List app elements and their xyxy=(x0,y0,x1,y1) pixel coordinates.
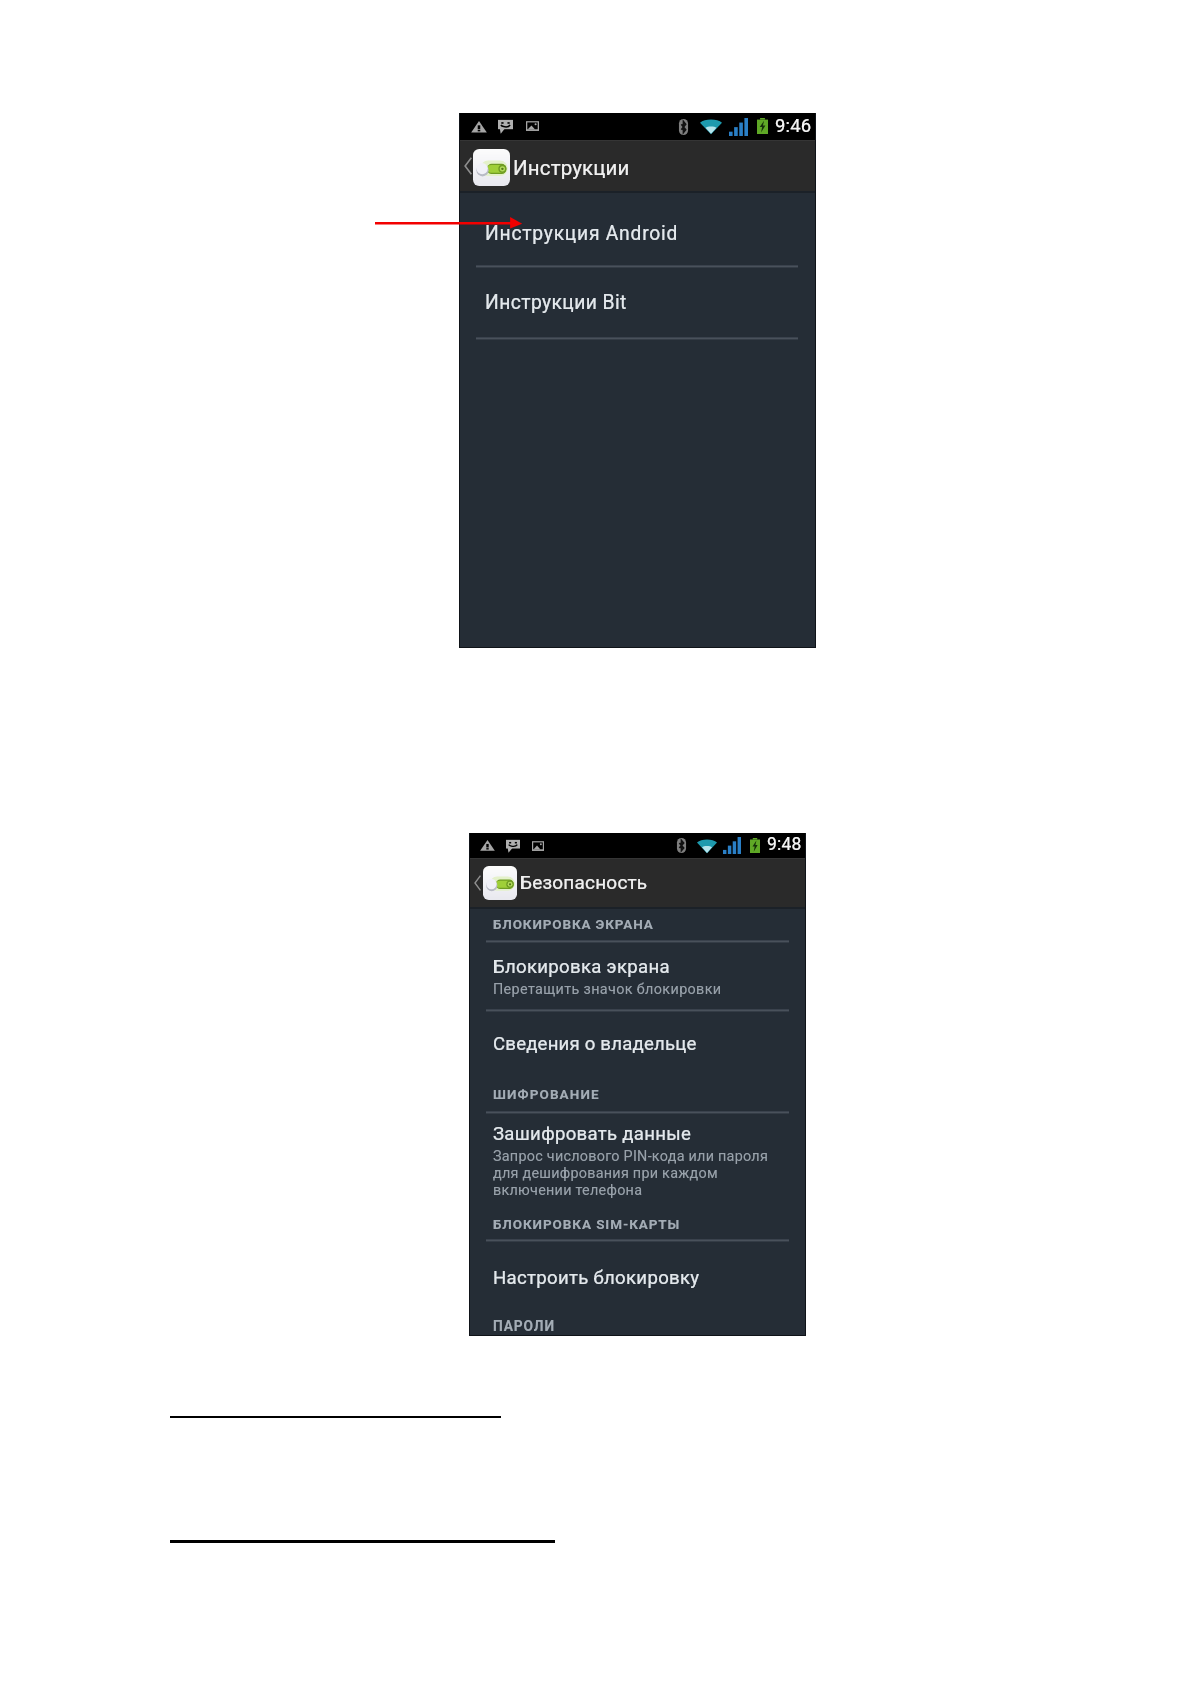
staticText: 9:46 xyxy=(775,115,812,137)
staticText: Блокировка экрана xyxy=(493,956,670,978)
staticText: Безопасность xyxy=(520,871,648,893)
button[interactable]: Безопасность, Back xyxy=(469,858,659,907)
button[interactable]: Зашифровать данные xyxy=(469,1114,806,1206)
staticText: Перетащить значок блокировки xyxy=(493,981,722,998)
staticText: Запрос числового PIN-кода или пароля xyxy=(493,1148,769,1165)
staticText: Инструкции xyxy=(513,156,630,180)
staticText: Зашифровать данные xyxy=(493,1123,692,1145)
button[interactable]: Инструкции, Back xyxy=(459,140,649,191)
staticText: Инструкция Android xyxy=(485,222,679,245)
staticText: для дешифрования при каждом xyxy=(493,1165,718,1182)
button[interactable]: Сведения о владельце xyxy=(469,1011,806,1077)
button[interactable]: Блокировка экрана xyxy=(469,942,806,1009)
button[interactable]: Настроить блокировку xyxy=(469,1242,806,1308)
staticText: 9:48 xyxy=(767,834,802,855)
staticText: ШИФРОВАНИЕ xyxy=(493,1086,600,1102)
staticText: включении телефона xyxy=(493,1182,643,1199)
staticText: БЛОКИРОВКА SIM-КАРТЫ xyxy=(493,1216,681,1232)
staticText: Настроить блокировку xyxy=(493,1267,700,1289)
staticText: Сведения о владельце xyxy=(493,1033,697,1055)
staticText: Инструкции Bit xyxy=(485,291,627,314)
staticText: БЛОКИРОВКА ЭКРАНА xyxy=(493,916,654,932)
button[interactable]: Инструкция Android xyxy=(459,193,816,265)
button[interactable]: Инструкции Bit xyxy=(459,267,816,337)
staticText: ПАРОЛИ xyxy=(493,1318,556,1334)
